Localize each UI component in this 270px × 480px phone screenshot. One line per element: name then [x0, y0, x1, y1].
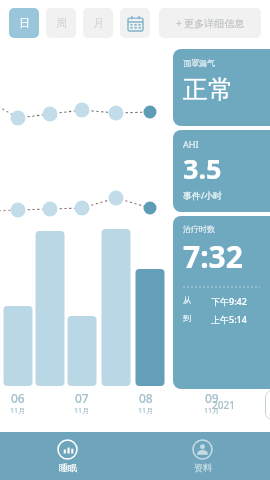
staticText: 07	[75, 390, 89, 406]
button[interactable]: 10	[265, 390, 270, 420]
button[interactable]: 资料	[135, 432, 270, 480]
staticText: 11月	[10, 406, 26, 416]
button[interactable]: 日	[9, 8, 39, 38]
button[interactable]: 睡眠	[0, 432, 135, 480]
staticText: 09	[205, 390, 219, 406]
staticText: 治疗时数	[183, 224, 215, 234]
staticText: 事件/小时	[183, 189, 223, 201]
staticText: 3.5	[183, 150, 222, 187]
button[interactable]: 治疗时数	[173, 216, 270, 389]
button[interactable]: 月	[83, 8, 113, 38]
staticText: AHI	[183, 138, 199, 150]
staticText: + 更多详细信息	[176, 16, 245, 30]
staticText: 下午9:42	[211, 295, 247, 307]
staticText: 面罩漏气	[183, 58, 215, 68]
staticText: 正常	[183, 74, 233, 105]
staticText: 到	[183, 313, 191, 323]
staticText: 2021	[212, 398, 235, 412]
staticText: 08	[139, 390, 153, 406]
staticText: 日	[19, 16, 30, 30]
staticText: 上午5:14	[211, 313, 247, 325]
staticText: 11月	[74, 406, 90, 416]
button[interactable]: 面罩漏气	[173, 49, 270, 126]
button[interactable]: Calendar	[120, 8, 150, 38]
button[interactable]: + 更多详细信息	[159, 8, 261, 38]
staticText: 周	[56, 16, 67, 30]
staticText: 睡眠	[59, 462, 77, 473]
button[interactable]: 周	[46, 8, 76, 38]
staticText: 11月	[138, 406, 154, 416]
staticText: 11月	[204, 406, 220, 416]
button[interactable]: AHI	[173, 130, 270, 212]
staticText: 资料	[194, 462, 212, 473]
staticText: 从	[183, 295, 191, 305]
staticText: 06	[11, 390, 25, 406]
staticText: 7:32	[183, 236, 243, 277]
staticText: 月	[93, 16, 104, 30]
